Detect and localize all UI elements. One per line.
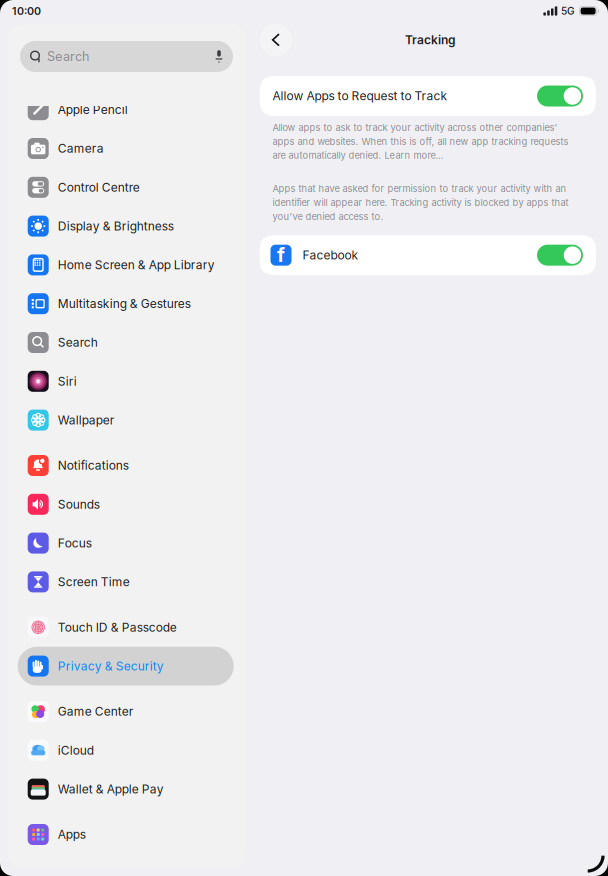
button[interactable]: Screen Time xyxy=(18,562,234,601)
button[interactable]: Siri xyxy=(18,362,234,401)
button[interactable]: Touch ID & Passcode xyxy=(18,608,234,647)
staticText: Screen Time xyxy=(58,575,130,589)
staticText: Wallet & Apple Pay xyxy=(58,782,164,796)
staticText: Privacy & Security xyxy=(58,659,164,673)
button[interactable]: f xyxy=(259,235,596,275)
staticText: Facebook xyxy=(302,248,358,262)
staticText: Touch ID & Passcode xyxy=(58,620,177,634)
button[interactable]: Apps xyxy=(18,815,234,854)
button[interactable]: Display & Brightness xyxy=(18,207,234,245)
staticText: Sounds xyxy=(58,497,100,511)
button[interactable]: Wallet & Apple Pay xyxy=(18,770,234,808)
staticText: Apps that have asked for permission to t… xyxy=(272,183,568,222)
button[interactable]: Back xyxy=(260,24,292,56)
button[interactable]: Focus xyxy=(18,524,234,562)
staticText: Camera xyxy=(58,141,104,156)
staticText: Search xyxy=(58,335,98,350)
button[interactable]: Allow Apps to Request to Track xyxy=(259,76,596,116)
staticText: Game Center xyxy=(58,704,134,719)
button[interactable]: Game Center xyxy=(18,692,234,731)
staticText: Allow apps to ask to track your activity… xyxy=(272,122,568,161)
staticText: Notifications xyxy=(58,458,129,473)
button[interactable]: Home Screen & App Library xyxy=(18,245,234,284)
button[interactable]: Search xyxy=(20,41,233,72)
staticText: Display & Brightness xyxy=(58,219,174,233)
staticText: 10:00 xyxy=(12,4,41,17)
staticText: Control Centre xyxy=(58,180,140,194)
staticText: Tracking xyxy=(405,33,456,47)
staticText: Focus xyxy=(58,536,92,550)
staticText: Home Screen & App Library xyxy=(58,258,215,272)
button[interactable]: Notifications xyxy=(18,446,234,485)
staticText: Allow Apps to Request to Track xyxy=(272,89,447,103)
staticText: Search xyxy=(47,49,89,64)
staticText: f xyxy=(277,243,285,267)
staticText: 5G xyxy=(561,5,575,17)
button[interactable]: Privacy & Security xyxy=(18,647,234,685)
staticText: Wallpaper xyxy=(58,413,115,427)
button[interactable]: Control Centre xyxy=(18,168,234,207)
staticText: Apps xyxy=(58,827,86,842)
button[interactable]: iCloud xyxy=(18,731,234,770)
staticText: Multitasking & Gestures xyxy=(58,296,191,311)
button[interactable]: Sounds xyxy=(18,485,234,524)
button[interactable]: Apple Pencil xyxy=(18,90,234,129)
staticText: iCloud xyxy=(58,743,94,757)
button[interactable]: Multitasking & Gestures xyxy=(18,284,234,323)
staticText: Siri xyxy=(58,374,77,388)
button[interactable]: Camera xyxy=(18,129,234,168)
staticText: Apple Pencil xyxy=(58,102,128,117)
button[interactable]: Search xyxy=(18,323,234,362)
button[interactable]: Wallpaper xyxy=(18,401,234,439)
